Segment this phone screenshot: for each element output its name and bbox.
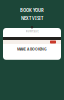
button[interactable]: Book now [50,40,56,43]
staticText: NEXT VISIT [21,14,43,21]
staticText: MAKE A BOOKING [17,46,47,52]
staticText: BOOK YOUR [20,7,44,13]
staticText: NORTHSIDE [25,29,38,33]
